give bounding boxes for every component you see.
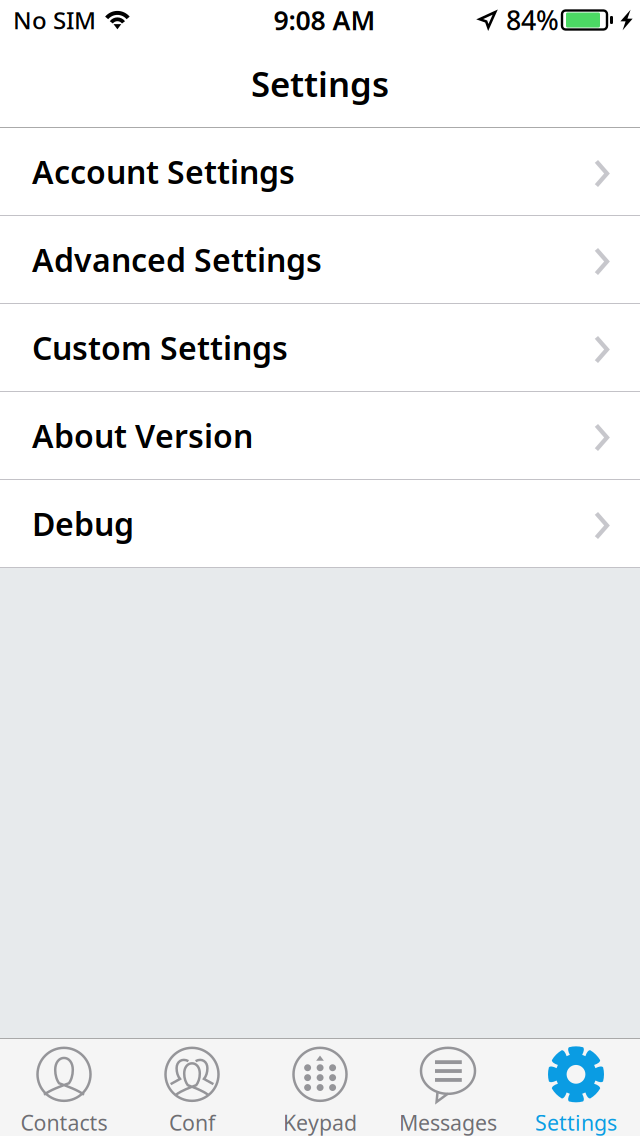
staticText: Debug [32,502,134,545]
staticText: Conf [169,1108,215,1136]
staticText: Keypad [283,1108,357,1136]
staticText: 9:08 AM [273,2,375,38]
button[interactable]: Advanced Settings [0,216,640,304]
button[interactable]: Messages [384,1039,512,1136]
staticText: Settings [535,1108,617,1136]
staticText: Contacts [20,1108,107,1136]
staticText: Messages [399,1108,497,1136]
staticText: No SIM [13,4,96,36]
button[interactable]: Contacts [0,1039,128,1136]
staticText: About Version [32,414,253,457]
staticText: Settings [251,60,389,106]
button[interactable]: Debug [0,480,640,568]
staticText: Account Settings [32,150,295,193]
button[interactable]: Custom Settings [0,304,640,392]
staticText: Custom Settings [32,326,288,369]
button[interactable]: Settings [512,1039,640,1136]
button[interactable]: Keypad [256,1039,384,1136]
button[interactable]: Conf [128,1039,256,1136]
button[interactable]: Account Settings [0,128,640,216]
staticText: 84% [506,2,559,38]
staticText: Advanced Settings [32,238,322,281]
button[interactable]: About Version [0,392,640,480]
